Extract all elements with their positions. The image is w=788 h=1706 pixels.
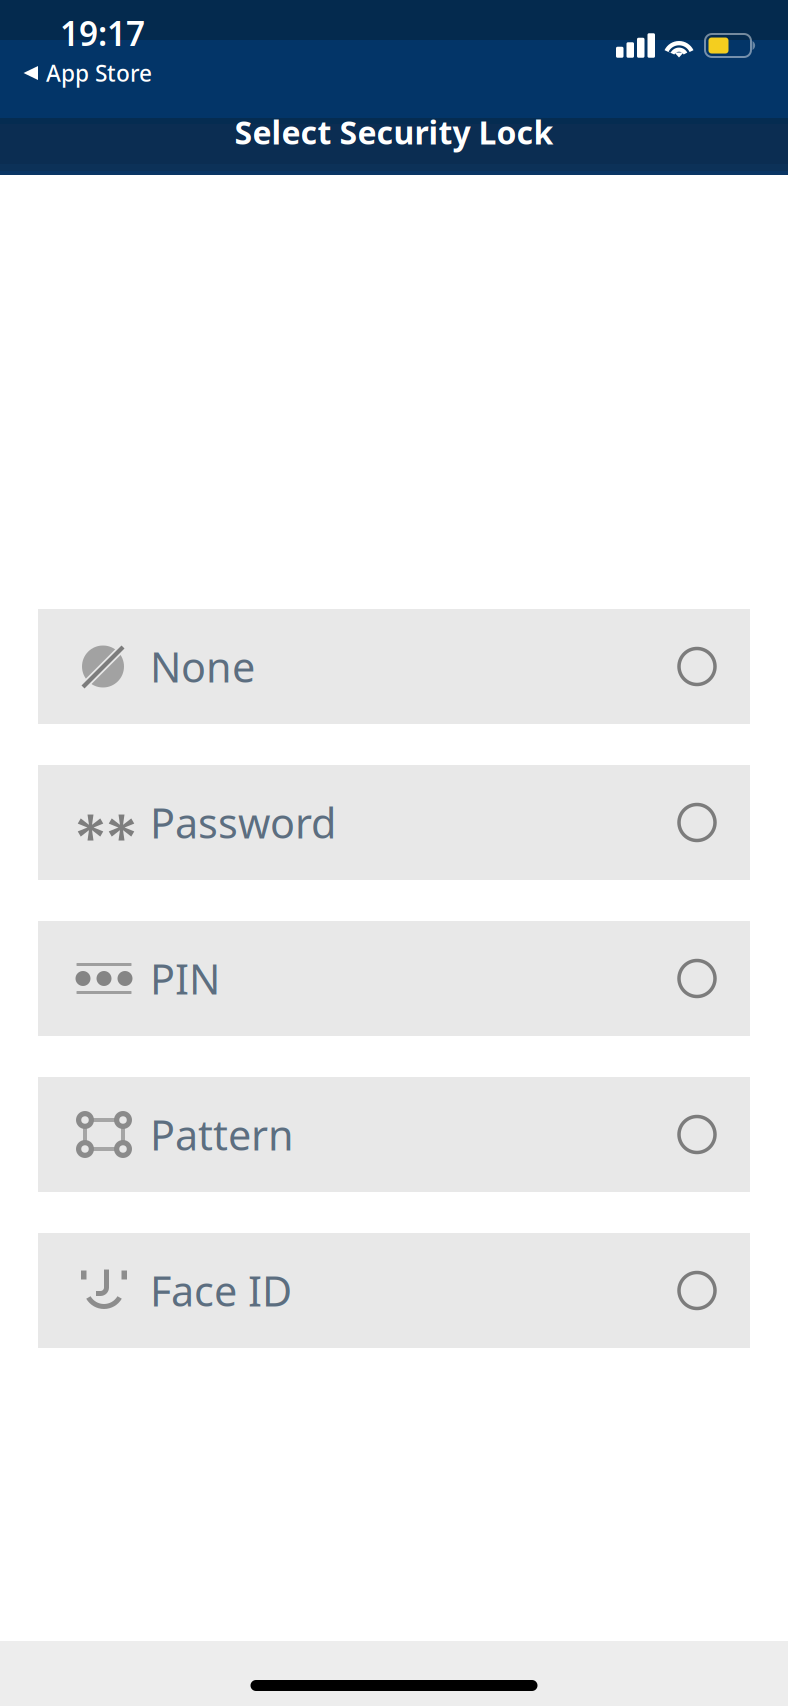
- button[interactable]: App Store: [0, 59, 788, 87]
- button[interactable]: None: [38, 609, 750, 724]
- staticText: Face ID: [150, 1263, 292, 1318]
- staticText: PIN: [150, 951, 220, 1006]
- staticText: 19:17: [60, 11, 145, 55]
- staticText: App Store: [46, 58, 152, 88]
- button[interactable]: Password: [38, 765, 750, 880]
- staticText: Password: [150, 795, 336, 850]
- staticText: Pattern: [150, 1107, 294, 1162]
- staticText: None: [150, 639, 255, 694]
- button[interactable]: PIN: [38, 921, 750, 1036]
- button[interactable]: Pattern: [38, 1077, 750, 1192]
- button[interactable]: Face ID: [38, 1233, 750, 1348]
- staticText: Select Security Lock: [234, 111, 553, 153]
